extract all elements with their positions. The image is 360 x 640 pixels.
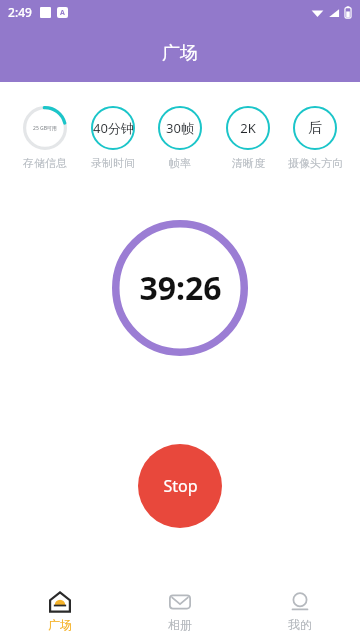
staticText: 39:26 (139, 266, 222, 310)
staticText: 25 GB可用 (33, 125, 57, 132)
staticText: 广场 (162, 42, 198, 65)
staticText: 摄像头方向 (288, 156, 343, 170)
staticText: Stop (163, 475, 198, 497)
staticText: 录制时间 (91, 156, 135, 170)
staticText: 2:49 (8, 4, 32, 20)
staticText: 2K (240, 119, 256, 137)
other: 我的 (289, 591, 311, 613)
staticText: 相册 (168, 617, 192, 632)
button[interactable]: Stop (138, 444, 222, 528)
button[interactable]: 40分钟 (82, 106, 144, 170)
button[interactable]: 30帧 (149, 106, 211, 170)
other: 相册 (169, 591, 191, 613)
button[interactable]: 广场 (0, 582, 120, 640)
button[interactable]: 25 GB可用 (14, 106, 76, 170)
staticText: 30帧 (166, 119, 194, 137)
button[interactable]: 我的 (240, 582, 360, 640)
staticText: 后 (308, 119, 322, 137)
other: 广场 (49, 591, 71, 613)
staticText: A (60, 8, 65, 18)
staticText: 帧率 (169, 156, 191, 170)
staticText: 清晰度 (232, 156, 265, 170)
button[interactable]: 相册 (120, 582, 240, 640)
staticText: 我的 (288, 617, 312, 632)
staticText: 广场 (48, 617, 72, 632)
button[interactable]: 后 (284, 106, 346, 170)
staticText: 40分钟 (93, 119, 134, 137)
button[interactable]: 2K (217, 106, 279, 170)
staticText: 存储信息 (23, 156, 67, 170)
